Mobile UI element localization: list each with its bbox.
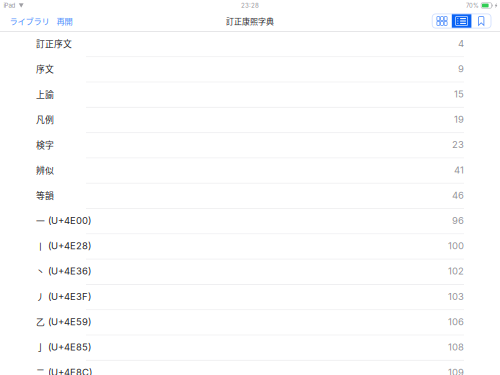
staticText: 19 (454, 114, 464, 125)
staticText: 103 (448, 291, 464, 302)
button[interactable]: 丨 (0, 234, 500, 260)
staticText: 訂正康煕字典 (226, 15, 274, 27)
staticText: (U+4E59) (48, 316, 91, 327)
staticText: 訂正序文 (36, 37, 72, 50)
button[interactable]: 辨似 (0, 158, 500, 184)
button[interactable]: 訂正序文 (0, 32, 500, 57)
staticText: 108 (448, 341, 464, 353)
button[interactable]: 丿 (0, 285, 500, 310)
staticText: 9 (458, 63, 464, 74)
staticText: 46 (452, 189, 464, 201)
staticText: 亅 (36, 341, 45, 353)
button[interactable]: Bookmarks (471, 14, 491, 28)
staticText: 丶 (36, 265, 45, 277)
staticText: 二 (36, 366, 45, 375)
staticText: 96 (452, 215, 464, 226)
staticText: 102 (448, 265, 464, 277)
staticText: 検字 (36, 138, 54, 151)
staticText: 70% (466, 2, 479, 9)
staticText: 100 (448, 240, 464, 252)
staticText: 再開 (56, 15, 72, 27)
staticText: 丨 (36, 239, 45, 252)
button[interactable]: 再開 (56, 15, 72, 27)
button[interactable]: 乙 (0, 310, 500, 336)
staticText: 一 (36, 214, 45, 227)
staticText: 4 (458, 38, 464, 49)
staticText: (U+4E8C) (48, 367, 92, 375)
staticText: 上諭 (36, 88, 54, 100)
staticText: iPad (4, 2, 16, 9)
staticText: 序文 (36, 62, 54, 75)
staticText: 23 (452, 139, 464, 150)
staticText: 15 (454, 88, 464, 100)
staticText: 乙 (36, 315, 45, 328)
staticText: 辨似 (36, 164, 54, 176)
button[interactable]: 丶 (0, 260, 500, 285)
staticText: 106 (448, 316, 464, 327)
button[interactable]: 凡例 (0, 108, 500, 133)
button[interactable]: 検字 (0, 133, 500, 158)
staticText: (U+4E85) (48, 341, 91, 353)
button[interactable]: 序文 (0, 57, 500, 83)
button[interactable]: 上諭 (0, 83, 500, 108)
staticText: (U+4E3F) (48, 291, 91, 302)
staticText: (U+4E36) (48, 265, 91, 277)
button[interactable]: 亅 (0, 336, 500, 361)
staticText: ライブラリ (9, 15, 49, 27)
staticText: (U+4E28) (48, 240, 91, 252)
staticText: 41 (454, 164, 464, 176)
button[interactable]: 一 (0, 209, 500, 234)
staticText: (U+4E00) (48, 215, 91, 226)
staticText: 丿 (36, 290, 45, 303)
button[interactable]: List view (452, 14, 471, 28)
button[interactable]: Grid view (432, 14, 452, 28)
staticText: 109 (448, 367, 464, 375)
button[interactable]: 等韻 (0, 184, 500, 209)
staticText: 23:28 (241, 2, 259, 9)
staticText: 等韻 (36, 189, 54, 202)
staticText: 凡例 (36, 113, 54, 126)
button[interactable]: 二 (0, 361, 500, 375)
button[interactable]: ライブラリ (9, 15, 49, 27)
